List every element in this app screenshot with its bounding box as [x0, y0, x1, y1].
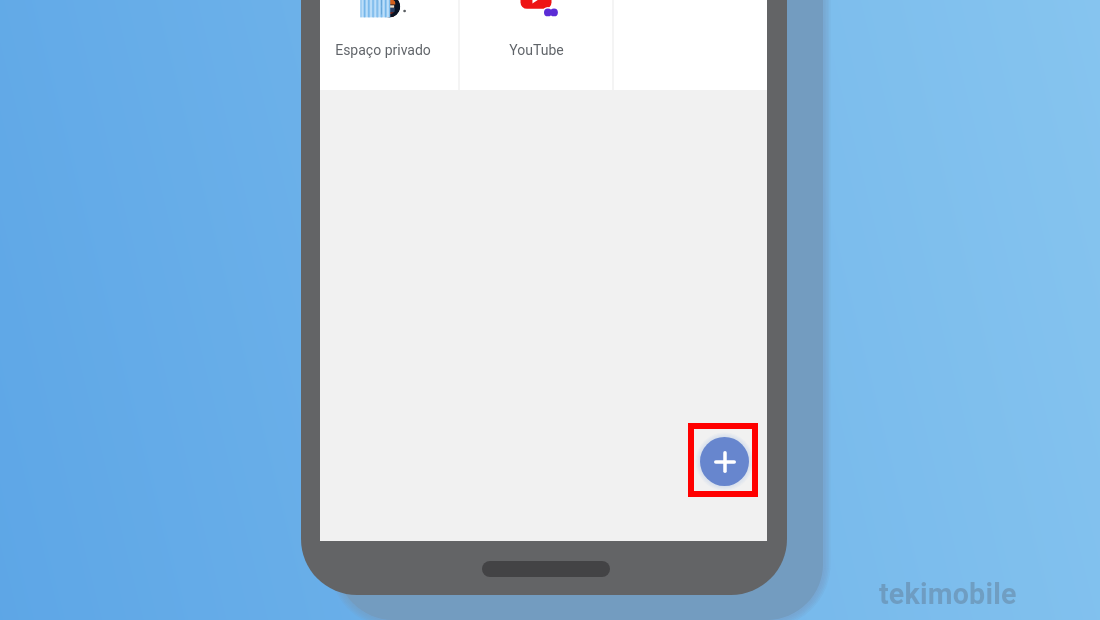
staticText: Espaço privado [335, 42, 431, 58]
staticText: tekimobile [879, 577, 1017, 611]
button[interactable]: Espaço privado [306, 0, 460, 90]
button[interactable]: YouTube [459, 0, 613, 90]
button[interactable]: Adicionar [700, 437, 749, 486]
staticText: YouTube [509, 42, 564, 58]
